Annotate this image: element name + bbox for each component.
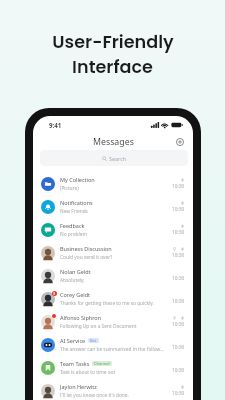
staticText: I'll let you know once it's done.	[60, 392, 129, 399]
button[interactable]: My Collection	[41, 172, 185, 195]
staticText: 10:30	[172, 390, 185, 397]
button[interactable]: Feedback	[41, 218, 185, 241]
button[interactable]: 3	[41, 287, 185, 310]
button[interactable]: Search	[40, 150, 188, 166]
staticText: 10:30	[172, 183, 185, 190]
staticText: Could you send it over?	[60, 254, 113, 261]
staticText: The answer can be summarized in the foll…	[60, 346, 165, 353]
staticText: (Picture)	[60, 185, 79, 192]
staticText: Messages	[93, 136, 134, 148]
staticText: Search	[109, 155, 127, 162]
button[interactable]: Alfonso Siphron	[41, 310, 185, 333]
staticText: Alfonso Siphron	[60, 314, 102, 321]
staticText: Notifications	[60, 199, 93, 206]
staticText: 9:41	[49, 121, 62, 129]
staticText: 3	[53, 291, 56, 296]
button[interactable]: New message	[174, 136, 186, 148]
staticText: 10:30	[172, 275, 185, 282]
staticText: Following Up on a Sent Document	[60, 323, 137, 330]
staticText: Interface	[72, 55, 153, 80]
staticText: 10:30	[172, 344, 185, 351]
button[interactable]: Team Tasks	[41, 356, 185, 379]
staticText: 10:30	[172, 229, 185, 236]
staticText: 10:30	[172, 367, 185, 374]
staticText: My Collection	[60, 176, 95, 183]
staticText: No problem	[60, 231, 87, 238]
staticText: Thanks for getting these to me so quickl…	[60, 300, 154, 307]
staticText: Channel	[94, 361, 110, 366]
staticText: Jaylon Herwitz	[60, 383, 97, 390]
button[interactable]: Business Discussion	[41, 241, 185, 264]
button[interactable]: AI Service	[41, 333, 185, 356]
button[interactable]: Jaylon Herwitz	[41, 379, 185, 400]
staticText: Bot	[90, 338, 97, 343]
staticText: User-Friendly	[52, 30, 174, 55]
button[interactable]: Nolan Geldt	[41, 264, 185, 287]
staticText: AI Service	[60, 337, 86, 344]
button[interactable]: Notifications	[41, 195, 185, 218]
staticText: 10:30	[172, 206, 185, 213]
staticText: Corey Geldt	[60, 291, 91, 298]
staticText: Feedback	[60, 222, 85, 229]
staticText: 10:30	[172, 298, 185, 305]
staticText: 10:30	[172, 252, 185, 259]
staticText: Absolutely.	[60, 277, 85, 284]
staticText: Task is about to time out	[60, 369, 116, 376]
staticText: Nolan Geldt	[60, 268, 91, 275]
staticText: 10:30	[172, 321, 185, 328]
staticText: Business Discussion	[60, 245, 112, 252]
staticText: Team Tasks	[60, 360, 90, 367]
staticText: New Friends	[60, 208, 88, 215]
